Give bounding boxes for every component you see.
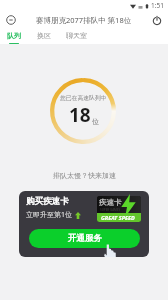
staticText: 队列: [7, 31, 21, 40]
staticText: 您已在高速队列中: [60, 94, 107, 101]
staticText: 立即升至第1位: [26, 210, 73, 220]
button[interactable]: Close: [4, 13, 18, 27]
staticText: 聊天室: [66, 31, 87, 40]
button[interactable]: 购买疾速卡: [19, 191, 149, 257]
staticText: 1:51: [151, 1, 164, 10]
staticText: 换区: [37, 31, 51, 40]
staticText: SUPER GAMES: [100, 208, 121, 212]
button[interactable]: 开通服务: [29, 229, 140, 248]
staticText: 排队太慢？快来加速: [53, 171, 116, 180]
staticText: 疾速卡: [99, 198, 122, 207]
button[interactable]: 队列: [0, 28, 28, 44]
staticText: 位: [92, 117, 99, 126]
staticText: GREAT SPEED: [101, 214, 135, 221]
button[interactable]: 换区: [30, 28, 58, 44]
staticText: 购买疾速卡: [26, 196, 69, 207]
staticText: 开通服务: [68, 233, 102, 244]
staticText: 赛博朋克2077排队中 第18位: [36, 15, 132, 25]
staticText: 18: [69, 102, 91, 128]
button[interactable]: Power: [150, 13, 164, 27]
button[interactable]: 聊天室: [62, 28, 90, 44]
